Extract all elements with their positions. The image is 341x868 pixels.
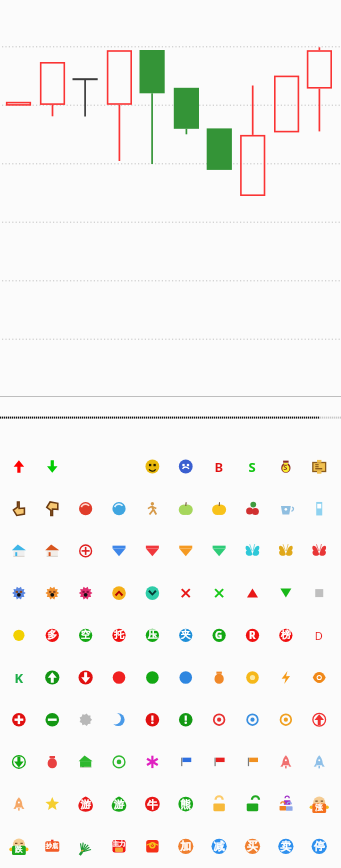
button[interactable] <box>0 0 341 868</box>
